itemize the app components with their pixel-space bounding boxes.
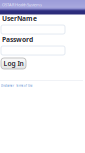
staticText: Terms of Use xyxy=(16,84,33,87)
staticText: UserName xyxy=(2,14,37,23)
button[interactable]: Disclaimer xyxy=(1,84,14,87)
staticText: Password xyxy=(2,35,33,44)
staticText: OSTAR Health Systems xyxy=(2,2,42,7)
staticText: Disclaimer xyxy=(1,84,14,87)
button[interactable]: Log In xyxy=(1,58,26,69)
button[interactable]: Terms of Use xyxy=(16,84,33,87)
staticText: Log In xyxy=(3,59,23,68)
